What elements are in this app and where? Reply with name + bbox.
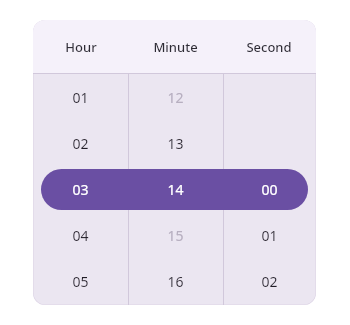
button[interactable]: 02 [223, 258, 315, 304]
button[interactable]: Second [223, 20, 315, 73]
button[interactable]: 01 [223, 212, 315, 258]
button[interactable] [223, 120, 315, 166]
button[interactable]: 01 [33, 74, 128, 120]
button[interactable]: Minute [128, 20, 223, 73]
button[interactable]: 12 [128, 74, 223, 120]
staticText: 02 [72, 134, 89, 153]
button[interactable]: 02 [33, 120, 128, 166]
staticText: Second [246, 38, 292, 56]
button[interactable]: 16 [128, 258, 223, 304]
staticText: 02 [261, 272, 278, 291]
staticText: 12 [167, 88, 184, 107]
button[interactable]: 00 [223, 166, 315, 212]
staticText: 16 [167, 272, 184, 291]
button[interactable] [41, 169, 308, 210]
staticText: 14 [167, 180, 184, 199]
staticText: 00 [261, 180, 278, 199]
staticText: 03 [72, 180, 89, 199]
button[interactable]: 04 [33, 212, 128, 258]
staticText: 01 [261, 226, 278, 245]
button[interactable]: 13 [128, 120, 223, 166]
button[interactable] [223, 74, 315, 120]
staticText: 15 [167, 226, 184, 245]
staticText: 04 [72, 226, 89, 245]
button[interactable]: 15 [128, 212, 223, 258]
button[interactable]: Hour [33, 20, 128, 73]
button[interactable]: 05 [33, 258, 128, 304]
staticText: Hour [65, 38, 97, 56]
staticText: Minute [153, 38, 198, 56]
staticText: 05 [72, 272, 89, 291]
staticText: 13 [167, 134, 184, 153]
button[interactable]: 14 [128, 166, 223, 212]
staticText: 01 [72, 88, 89, 107]
button[interactable]: 03 [33, 166, 128, 212]
